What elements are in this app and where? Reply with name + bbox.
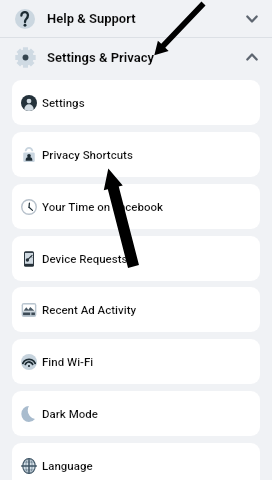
button[interactable]: Find Wi-Fi: [12, 339, 260, 384]
button[interactable]: Privacy Shortcuts: [12, 132, 260, 177]
staticText: Language: [42, 459, 93, 472]
staticText: Recent Ad Activity: [42, 303, 137, 316]
button[interactable]: Language: [12, 443, 260, 480]
staticText: Your Time on Facebook: [42, 200, 164, 213]
staticText: Privacy Shortcuts: [42, 148, 133, 161]
staticText: Dark Mode: [42, 407, 98, 420]
button[interactable]: Recent Ad Activity: [12, 287, 260, 332]
button[interactable]: Settings: [12, 80, 260, 125]
staticText: Find Wi-Fi: [42, 355, 94, 368]
staticText: Settings: [42, 96, 85, 109]
button[interactable]: Help & Support: [0, 0, 272, 37]
staticText: Settings & Privacy: [47, 50, 155, 65]
staticText: Device Requests: [42, 252, 128, 265]
other: Expand section: [240, 7, 264, 31]
button[interactable]: Device Requests: [12, 236, 260, 281]
staticText: Help & Support: [47, 11, 136, 26]
button[interactable]: Your Time on Facebook: [12, 184, 260, 229]
button[interactable]: Settings & Privacy: [0, 38, 272, 76]
other: Collapse section: [240, 45, 264, 69]
button[interactable]: Dark Mode: [12, 391, 260, 436]
